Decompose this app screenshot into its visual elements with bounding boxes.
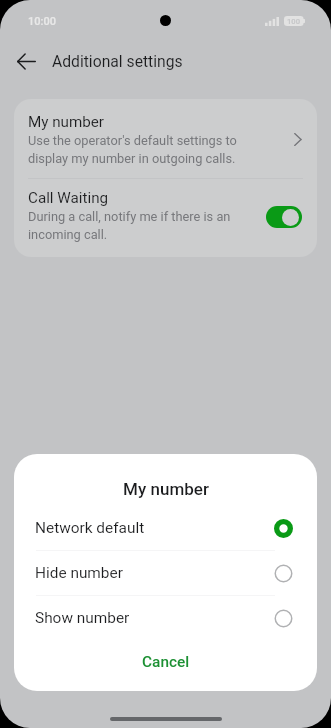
- staticText: My number: [123, 479, 209, 499]
- staticText: Call Waiting: [28, 189, 109, 207]
- button[interactable]: Call waiting toggle: [266, 206, 302, 228]
- button[interactable]: Network default: [14, 506, 317, 550]
- staticText: 100: [287, 17, 300, 26]
- staticText: Use the operator's default settings to d…: [28, 133, 245, 166]
- staticText: Additional settings: [52, 52, 183, 70]
- staticText: 10:00: [28, 15, 56, 28]
- staticText: Show number: [35, 609, 274, 627]
- button[interactable]: Call Waiting: [14, 179, 317, 257]
- staticText: Hide number: [35, 564, 274, 582]
- staticText: My number: [28, 113, 105, 131]
- button[interactable]: Hide number: [14, 551, 317, 595]
- button[interactable]: Cancel: [14, 640, 317, 684]
- button[interactable]: My number: [14, 99, 317, 178]
- staticText: Network default: [35, 519, 274, 537]
- staticText: During a call, notify me if there is an …: [28, 209, 249, 242]
- button[interactable]: Back: [5, 40, 47, 82]
- staticText: Cancel: [142, 653, 190, 671]
- button[interactable]: Show number: [14, 596, 317, 640]
